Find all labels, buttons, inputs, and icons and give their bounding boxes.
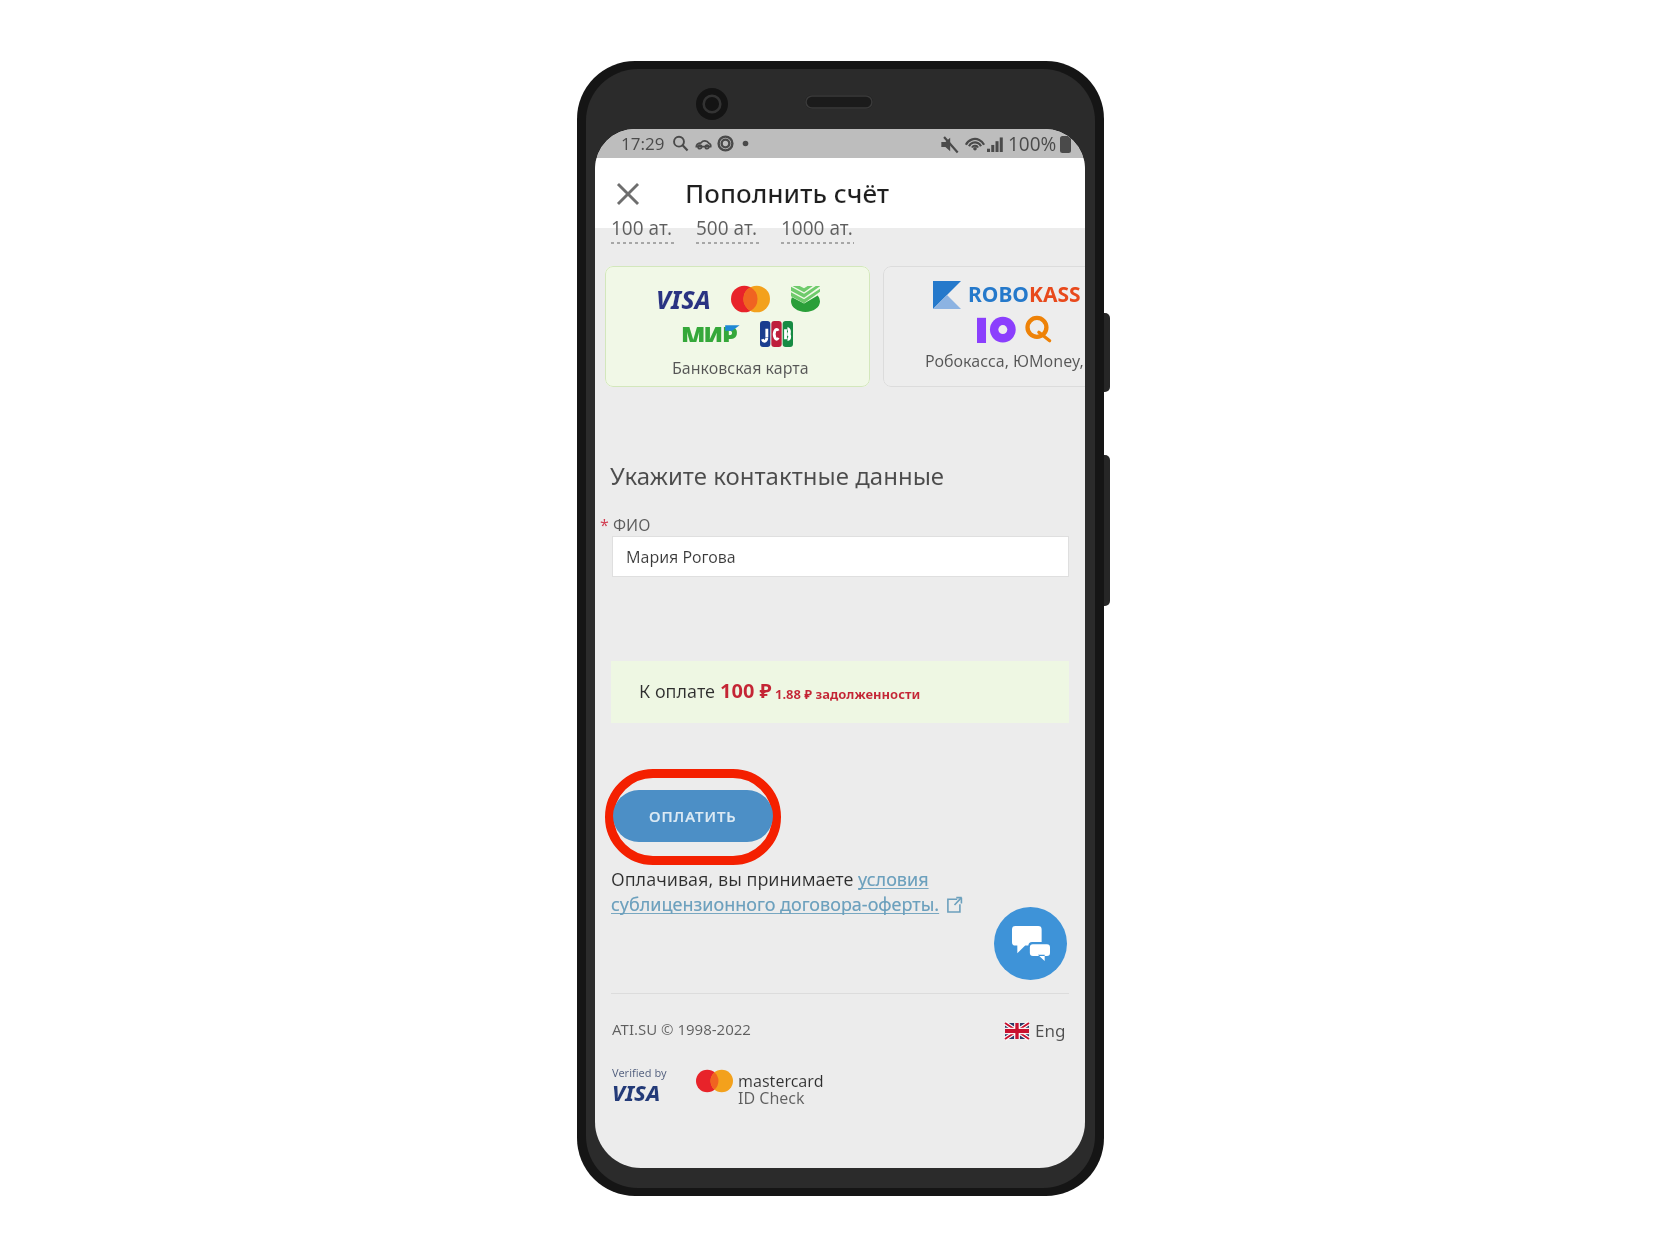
staticText: К оплате bbox=[639, 679, 720, 704]
button[interactable]: VISA bbox=[605, 266, 870, 387]
button[interactable]: сублицензионного договора-оферты. bbox=[611, 892, 940, 917]
staticText: 100 ат. bbox=[611, 215, 673, 241]
staticText: ОПЛАТИТЬ bbox=[649, 806, 737, 826]
staticText: 100% bbox=[1008, 131, 1057, 157]
staticText: Eng bbox=[1035, 1019, 1066, 1042]
staticText: Банковская карта bbox=[672, 357, 809, 379]
button[interactable]: ROBO bbox=[883, 266, 1085, 387]
staticText: Робокасса, ЮMoney, С bbox=[925, 350, 1085, 372]
staticText: 17:29 bbox=[621, 132, 665, 155]
staticText: ROBO bbox=[968, 280, 1029, 309]
button[interactable]: Открыть чат bbox=[994, 907, 1067, 980]
staticText: Оплачивая, вы принимаете условия bbox=[611, 867, 929, 892]
staticText: Мария Рогова bbox=[626, 546, 736, 568]
staticText: 500 ат. bbox=[696, 215, 758, 241]
staticText: VISA bbox=[656, 282, 711, 310]
staticText: 100 ₽ bbox=[720, 677, 772, 704]
staticText: Укажите контактные данные bbox=[610, 459, 945, 492]
button[interactable]: Оплачивая, вы принимаете условия bbox=[611, 867, 962, 917]
staticText: МИ bbox=[681, 318, 722, 342]
staticText: ATI.SU © 1998-2022 bbox=[612, 1019, 751, 1039]
staticText: * bbox=[600, 514, 609, 536]
button[interactable]: 500 ат. bbox=[696, 215, 759, 245]
button[interactable]: 100 ат. bbox=[611, 215, 674, 245]
staticText: ID Check bbox=[738, 1087, 805, 1109]
button[interactable]: ОПЛАТИТЬ bbox=[613, 790, 773, 842]
staticText: 1000 ат. bbox=[781, 215, 853, 241]
staticText: VISA bbox=[612, 1077, 661, 1107]
staticText: 1.88 ₽ задолженности bbox=[775, 685, 921, 703]
staticText: KASS bbox=[1029, 280, 1081, 309]
button[interactable]: Закрыть bbox=[606, 172, 650, 216]
button[interactable]: 1000 ат. bbox=[781, 215, 854, 245]
staticText: Verified by bbox=[612, 1065, 667, 1080]
button[interactable]: Мария Рогова bbox=[612, 536, 1069, 577]
staticText: Пополнить счёт bbox=[685, 175, 890, 210]
staticText: ФИО bbox=[613, 514, 651, 536]
staticText: mastercard bbox=[738, 1070, 824, 1092]
button[interactable]: Eng bbox=[1005, 1019, 1066, 1042]
staticText: Р bbox=[722, 318, 738, 342]
